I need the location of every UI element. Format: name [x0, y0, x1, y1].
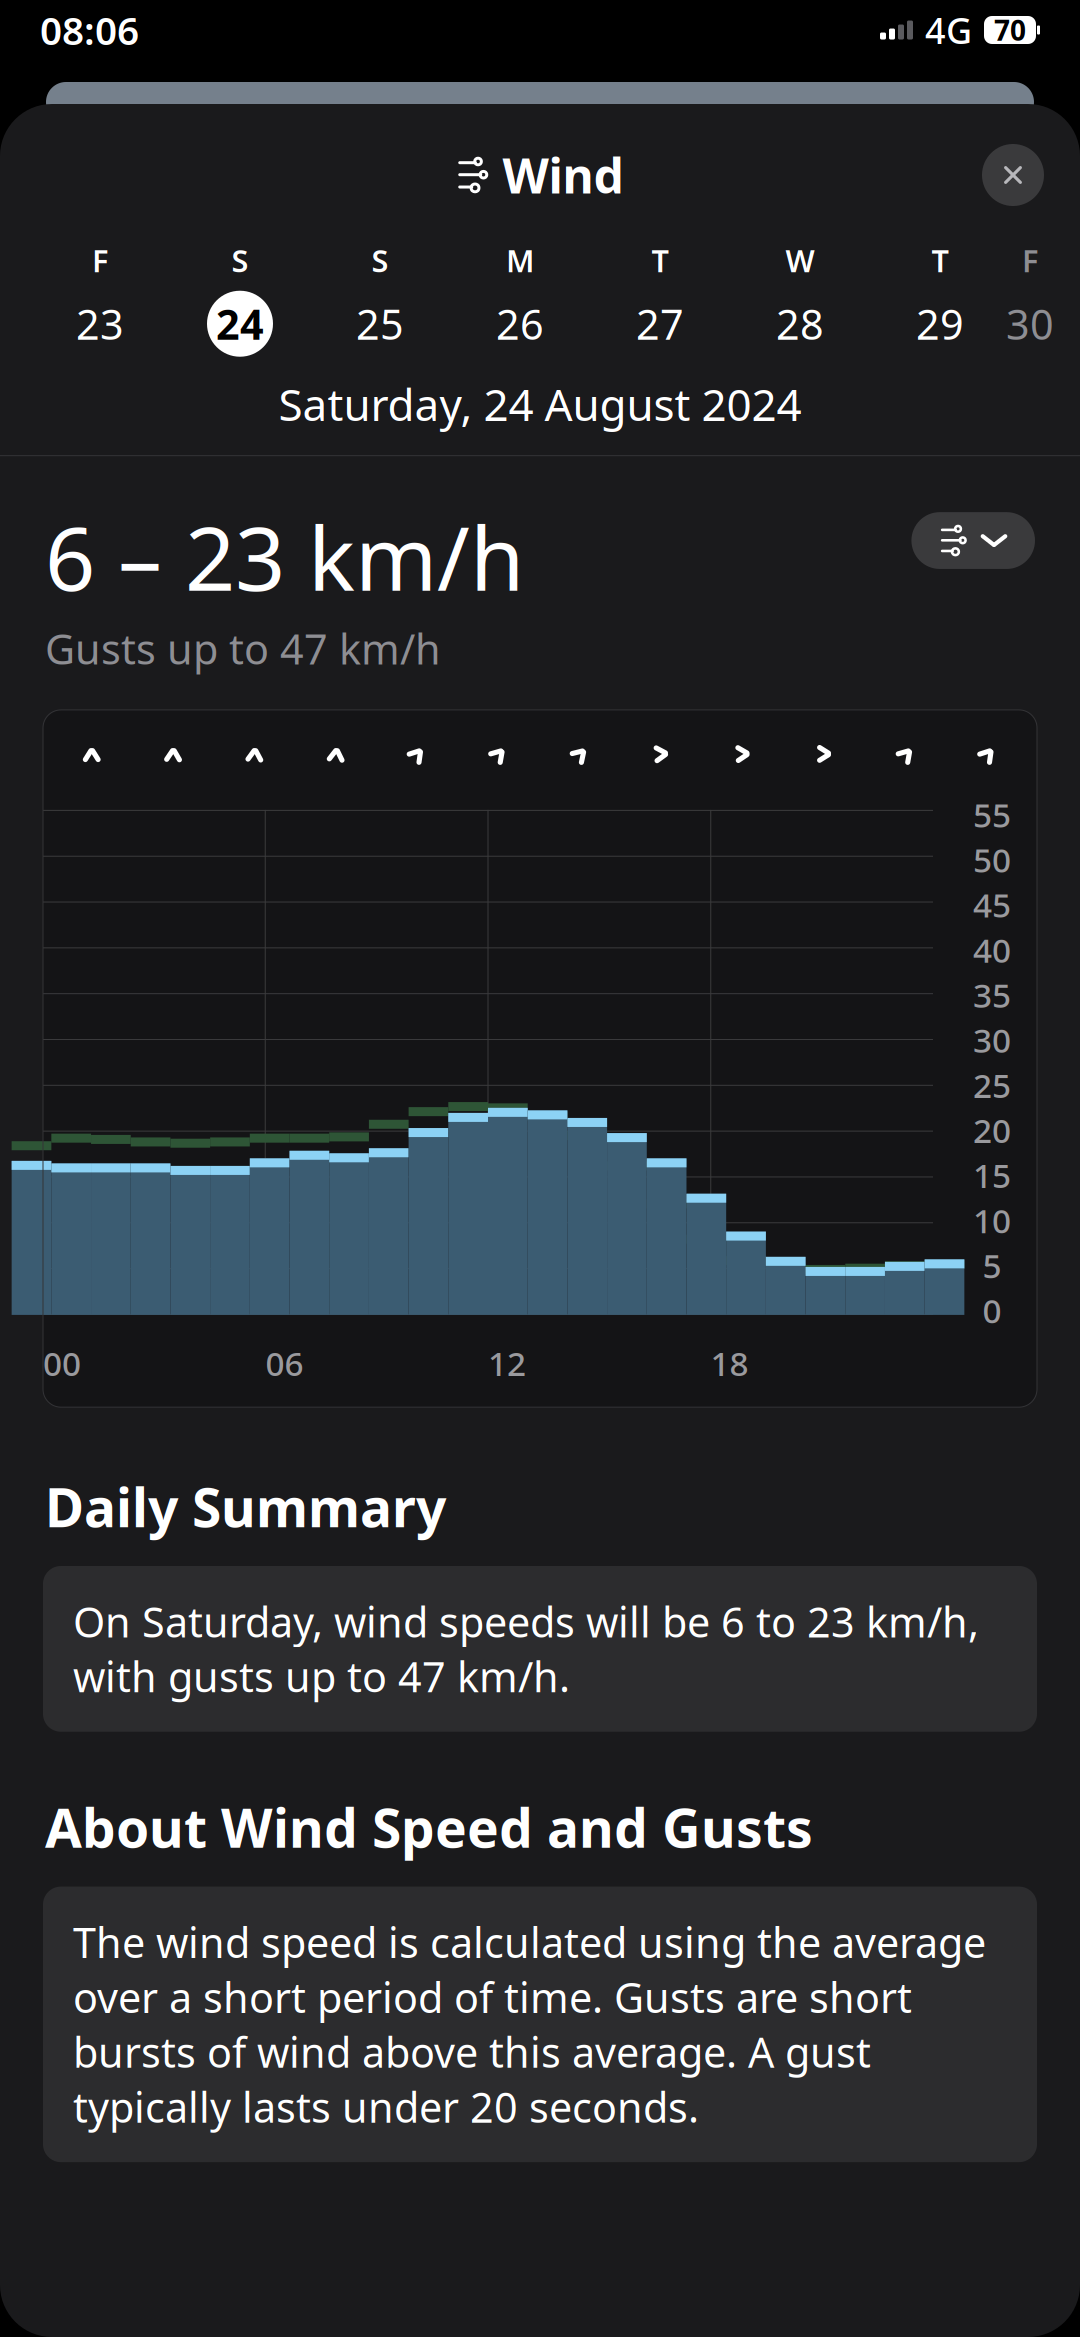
button[interactable]: F	[997, 240, 1063, 357]
staticText: 35	[973, 973, 1011, 1017]
staticText: 50	[973, 837, 1011, 882]
staticText: On Saturday, wind speeds will be 6 to 23…	[73, 1594, 979, 1704]
staticText: S	[231, 240, 248, 281]
staticText: 30	[973, 1018, 1011, 1062]
button[interactable]: Change metric	[911, 512, 1035, 569]
staticText: T	[931, 240, 948, 281]
button[interactable]: F	[67, 240, 133, 357]
staticText: 26	[496, 296, 544, 351]
staticText: 0	[982, 1288, 1001, 1332]
staticText: About Wind Speed and Gusts	[45, 1792, 813, 1863]
button[interactable]: S	[207, 240, 273, 357]
staticText: 25	[356, 296, 404, 351]
staticText: The wind speed is calculated using the a…	[73, 1915, 986, 2134]
staticText: Daily Summary	[45, 1471, 446, 1542]
staticText: 45	[973, 882, 1011, 927]
staticText: Gusts up to 47 km/h	[45, 621, 441, 676]
staticText: 40	[973, 928, 1011, 972]
staticText: 06	[265, 1341, 303, 1385]
staticText: 20	[973, 1108, 1011, 1152]
staticText: 4G	[925, 6, 972, 54]
staticText: F	[92, 240, 108, 281]
button[interactable]: M	[487, 240, 553, 357]
staticText: 27	[636, 296, 684, 351]
staticText: 10	[973, 1198, 1011, 1242]
staticText: Saturday, 24 August 2024	[278, 375, 801, 433]
staticText: 55	[973, 792, 1011, 837]
staticText: 30	[1006, 296, 1054, 351]
staticText: 15	[973, 1153, 1011, 1197]
staticText: M	[506, 240, 534, 281]
staticText: 23	[76, 296, 124, 351]
staticText: T	[651, 240, 668, 281]
button[interactable]: Close	[982, 144, 1044, 206]
staticText: 08:06	[40, 4, 139, 56]
staticText: 12	[488, 1341, 526, 1385]
staticText: 18	[710, 1341, 748, 1385]
staticText: 25	[973, 1063, 1011, 1107]
button[interactable]: T	[627, 240, 693, 357]
staticText: 28	[776, 296, 824, 351]
staticText: 6 – 23 km/h	[45, 498, 524, 615]
staticText: F	[1022, 240, 1038, 281]
staticText: S	[371, 240, 388, 281]
staticText: 24	[216, 296, 264, 351]
staticText: 5	[982, 1243, 1001, 1287]
staticText: Wind	[502, 143, 623, 207]
button[interactable]: S	[347, 240, 413, 357]
button[interactable]: W	[767, 240, 833, 357]
staticText: 29	[916, 296, 964, 351]
staticText: 70	[994, 11, 1026, 49]
button[interactable]: T	[907, 240, 973, 357]
staticText: W	[785, 240, 814, 281]
staticText: 00	[43, 1341, 81, 1385]
